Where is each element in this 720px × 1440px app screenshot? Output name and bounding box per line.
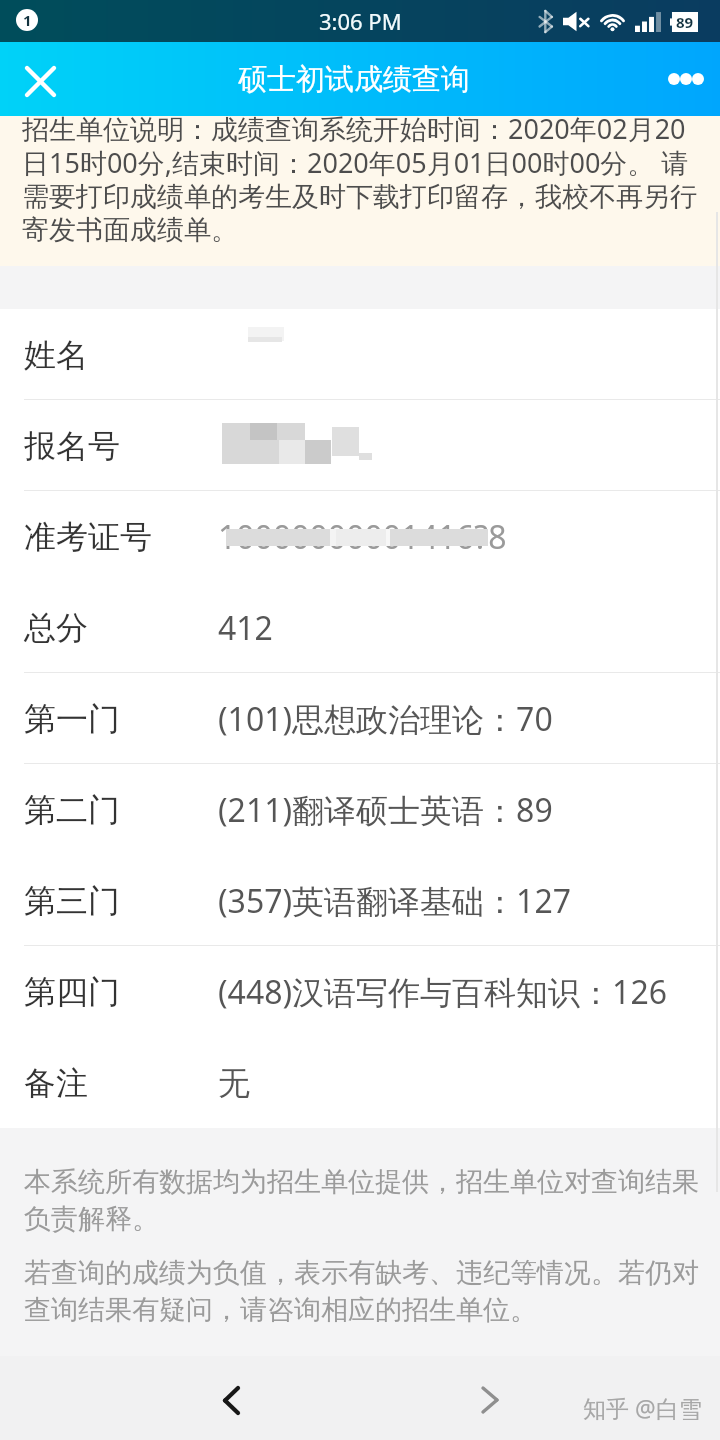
staticText: (101)思想政治理论：70	[218, 697, 553, 741]
button[interactable]: Forward	[457, 1367, 523, 1433]
button[interactable]: 姓名	[0, 309, 720, 400]
staticText: 1	[23, 10, 32, 30]
staticText: 10000000001416?8	[218, 515, 507, 559]
staticText: 知乎 @白雪	[583, 1392, 702, 1423]
staticText: 第四门	[24, 972, 120, 1012]
button[interactable]: 第一门	[0, 673, 720, 764]
staticText: 招生单位说明：成绩查询系统开始时间：2020年02月20日15时00分,结束时间…	[22, 110, 706, 247]
staticText: 硕士初试成绩查询	[238, 61, 470, 98]
staticText: 若查询的成绩为负值，表示有缺考、违纪等情况。若仍对查询结果有疑问，请咨询相应的招…	[24, 1256, 700, 1327]
staticText: 报名号	[24, 426, 120, 466]
staticText: 无	[218, 1063, 250, 1103]
staticText: 89	[676, 12, 694, 32]
button[interactable]: 总分	[0, 582, 720, 673]
staticText: 第三门	[24, 881, 120, 921]
button[interactable]: 报名号	[0, 400, 720, 491]
staticText: 备注	[24, 1063, 88, 1103]
staticText: (357)英语翻译基础：127	[218, 879, 572, 923]
staticText: (211)翻译硕士英语：89	[218, 788, 553, 832]
button[interactable]: Back	[198, 1367, 264, 1433]
staticText: 姓名	[24, 335, 88, 375]
button[interactable]: 第二门	[0, 764, 720, 855]
staticText: 412	[218, 606, 273, 650]
staticText: 3:06 PM	[319, 6, 402, 36]
staticText: 第二门	[24, 790, 120, 830]
staticText: 本系统所有数据均为招生单位提供，招生单位对查询结果负责解释。	[24, 1165, 700, 1236]
button[interactable]: 准考证号	[0, 491, 720, 582]
button[interactable]: 第四门	[0, 946, 720, 1037]
button[interactable]: More options	[652, 42, 720, 116]
button[interactable]: Close	[0, 42, 78, 116]
button[interactable]: 备注	[0, 1037, 720, 1128]
button[interactable]: 第三门	[0, 855, 720, 946]
staticText: 准考证号	[24, 517, 152, 557]
staticText: 第一门	[24, 699, 120, 739]
staticText: (448)汉语写作与百科知识：126	[218, 970, 668, 1014]
staticText: 总分	[24, 608, 88, 648]
